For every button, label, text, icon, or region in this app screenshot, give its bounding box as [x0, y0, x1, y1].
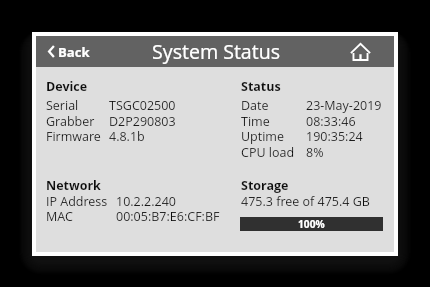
- staticText: Storage: [241, 177, 289, 194]
- staticText: 10.2.2.240: [116, 193, 177, 210]
- staticText: 475.3 free of 475.4 GB: [241, 193, 370, 210]
- staticText: Serial: [46, 97, 79, 114]
- staticText: 8%: [306, 144, 324, 161]
- staticText: Uptime: [241, 128, 284, 145]
- button[interactable]: Back: [36, 36, 100, 67]
- staticText: D2P290803: [109, 113, 176, 130]
- staticText: 23-May-2019: [306, 97, 382, 114]
- staticText: TSGC02500: [109, 97, 176, 114]
- staticText: 100%: [298, 217, 325, 231]
- staticText: Grabber: [46, 113, 95, 130]
- button[interactable]: Home: [345, 36, 376, 67]
- staticText: Date: [241, 97, 269, 114]
- staticText: Firmware: [46, 128, 101, 145]
- staticText: MAC: [46, 208, 73, 225]
- staticText: Device: [46, 78, 88, 95]
- staticText: Network: [46, 177, 101, 194]
- staticText: System Status: [152, 38, 281, 65]
- staticText: 4.8.1b: [109, 128, 145, 145]
- staticText: Back: [58, 43, 90, 61]
- staticText: 00:05:B7:E6:CF:BF: [116, 208, 220, 225]
- staticText: IP Address: [46, 193, 108, 210]
- staticText: Time: [241, 113, 270, 130]
- staticText: CPU load: [241, 144, 295, 161]
- staticText: 190:35:24: [306, 128, 363, 145]
- staticText: 08:33:46: [306, 113, 356, 130]
- staticText: Status: [241, 78, 281, 95]
